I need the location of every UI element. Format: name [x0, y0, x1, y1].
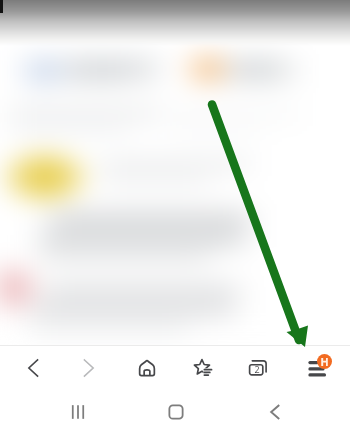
button[interactable]: Menu	[296, 346, 342, 390]
button[interactable]: Bookmarks	[181, 346, 225, 390]
button[interactable]: Home	[154, 390, 198, 434]
button[interactable]: Recent apps	[56, 390, 100, 434]
staticText: H	[320, 355, 329, 369]
button[interactable]: Back	[252, 390, 296, 434]
button[interactable]: Tabs, 2 open	[236, 346, 280, 390]
button[interactable]: Home	[125, 346, 169, 390]
staticText: 2	[254, 363, 260, 375]
button[interactable]: Back	[10, 346, 54, 390]
button[interactable]: Forward	[68, 346, 112, 390]
